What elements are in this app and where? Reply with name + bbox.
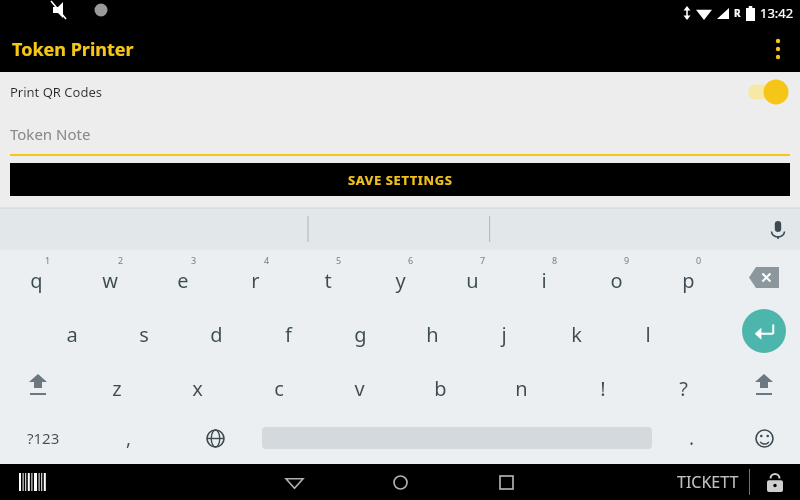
button[interactable]: 9 [580,250,652,304]
button[interactable]: 5 [292,250,364,304]
staticText: k [571,321,582,348]
staticText: 3 [191,254,197,266]
staticText: b [434,375,447,402]
button[interactable]: f [252,304,324,358]
button[interactable]: h [396,304,468,358]
button[interactable]: ? [643,358,724,412]
staticText: t [324,267,332,294]
button[interactable]: c [238,358,319,412]
staticText: 9 [624,254,630,266]
staticText: 6 [408,254,414,266]
button[interactable]: s [108,304,180,358]
button[interactable]: Change language [172,412,258,464]
staticText: 7 [480,254,486,266]
button[interactable]: 6 [364,250,436,304]
button[interactable]: Enter [742,309,786,353]
staticText: r [251,267,260,294]
staticText: , [126,425,132,451]
staticText: f [285,321,292,348]
button[interactable]: Token Note [0,112,800,156]
button[interactable]: z [76,358,157,412]
button[interactable]: . [656,412,728,464]
staticText: ?123 [27,428,60,448]
staticText: i [541,267,547,294]
staticText: Print QR Codes [10,83,102,101]
staticText: 2 [118,254,124,266]
button[interactable]: Lock [760,467,790,497]
staticText: 13:42 [760,4,794,22]
staticText: ? [679,375,688,402]
staticText: ! [600,375,606,402]
button[interactable]: Back [258,464,330,500]
staticText: R [734,6,741,20]
staticText: Token Note [10,124,91,144]
button[interactable]: 4 [219,250,292,304]
staticText: y [395,267,406,294]
button[interactable]: 0 [652,250,724,304]
staticText: g [354,321,367,348]
button[interactable]: Barcode scanner [10,464,50,500]
button[interactable]: Shift [0,358,76,412]
button[interactable]: Backspace [728,250,800,304]
button[interactable]: TICKETT [677,471,739,493]
button[interactable]: a [36,304,108,358]
button[interactable]: Print QR Codes [0,72,800,112]
staticText: l [645,321,651,348]
staticText: 8 [552,254,558,266]
button[interactable]: Voice input [756,208,800,250]
button[interactable]: l [612,304,684,358]
button[interactable]: Home [364,464,436,500]
staticText: . [689,425,695,451]
staticText: u [466,267,479,294]
button[interactable]: g [324,304,396,358]
button[interactable]: 3 [146,250,219,304]
button[interactable]: SAVE SETTINGS [10,163,790,196]
button[interactable]: Recent apps [470,464,542,500]
staticText: d [210,321,223,348]
button[interactable]: ! [562,358,643,412]
staticText: Token Printer [12,37,134,62]
staticText: j [501,321,507,348]
staticText: z [112,375,122,402]
staticText: SAVE SETTINGS [348,171,453,189]
button[interactable]: 8 [508,250,580,304]
button[interactable]: Shift [728,358,800,412]
button[interactable]: 7 [436,250,508,304]
staticText: e [177,267,189,294]
button[interactable]: Emoji [728,412,800,464]
button[interactable]: n [481,358,562,412]
staticText: v [354,375,365,402]
button[interactable]: x [157,358,238,412]
staticText: 0 [696,254,702,266]
staticText: p [682,267,695,294]
staticText: 4 [264,254,270,266]
button[interactable]: 2 [73,250,146,304]
staticText: 1 [45,254,51,266]
button[interactable]: ?123 [0,412,86,464]
staticText: w [102,267,118,294]
button[interactable]: 1 [0,250,73,304]
button[interactable]: d [180,304,252,358]
staticText: s [139,321,149,348]
staticText: x [192,375,203,402]
button[interactable]: k [540,304,612,358]
staticText: c [274,375,284,402]
button[interactable]: , [86,412,172,464]
staticText: n [515,375,528,402]
button[interactable]: j [468,304,540,358]
staticText: q [30,267,43,294]
button[interactable]: b [400,358,481,412]
staticText: a [66,321,78,348]
staticText: o [610,267,623,294]
button[interactable]: More options [756,26,800,72]
staticText: h [426,321,439,348]
staticText: 5 [336,254,342,266]
button[interactable]: v [319,358,400,412]
